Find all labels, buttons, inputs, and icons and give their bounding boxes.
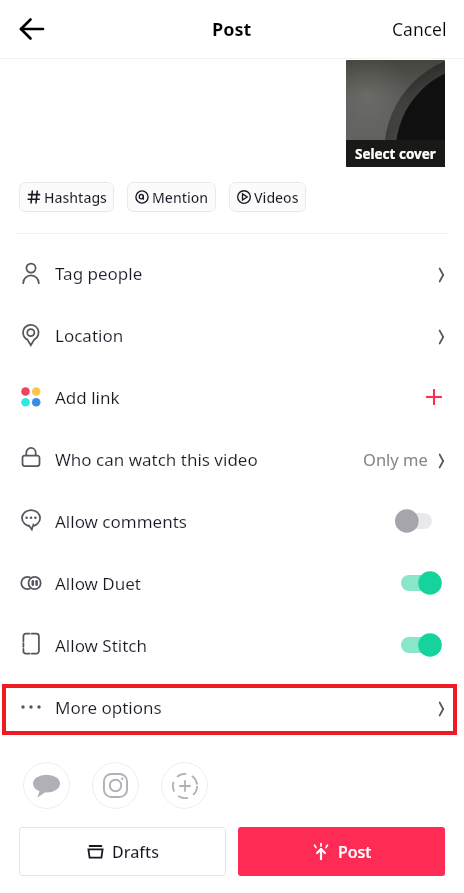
staticText: Select cover xyxy=(355,145,436,163)
staticText: Drafts xyxy=(112,841,159,863)
staticText: Post xyxy=(212,17,252,42)
staticText: Only me xyxy=(363,448,428,470)
button[interactable]: Add to story xyxy=(161,762,208,809)
button[interactable]: Cancel xyxy=(375,5,464,53)
button[interactable]: Back xyxy=(14,11,50,47)
staticText: Who can watch this video xyxy=(55,448,258,471)
button[interactable]: Add link xyxy=(0,366,464,428)
button[interactable]: Who can watch this video xyxy=(0,428,464,490)
button[interactable]: Allow Stitch xyxy=(0,614,464,676)
staticText: Tag people xyxy=(55,262,143,285)
staticText: More options xyxy=(55,696,162,719)
button[interactable]: Share to messages xyxy=(23,762,70,809)
button[interactable]: More options xyxy=(0,676,464,738)
button[interactable]: Tag people xyxy=(0,242,464,304)
button[interactable]: On xyxy=(395,570,442,596)
button[interactable]: On xyxy=(395,632,442,658)
staticText: Hashtags xyxy=(44,188,107,207)
button[interactable]: Location xyxy=(0,304,464,366)
button[interactable]: Select cover xyxy=(346,60,445,167)
staticText: Cancel xyxy=(392,17,447,41)
button[interactable]: Hashtags xyxy=(19,182,114,212)
staticText: Mention xyxy=(152,188,209,207)
staticText: Add link xyxy=(55,386,120,409)
staticText: Post xyxy=(338,841,372,863)
staticText: Allow Duet xyxy=(55,572,142,595)
staticText: Videos xyxy=(254,188,299,207)
button[interactable]: Mention xyxy=(127,182,216,212)
button[interactable]: Off xyxy=(395,508,442,534)
button[interactable]: Drafts xyxy=(19,827,226,876)
staticText: Location xyxy=(55,324,124,347)
button[interactable]: Videos xyxy=(229,182,306,212)
button[interactable]: Allow comments xyxy=(0,490,464,552)
staticText: Allow comments xyxy=(55,510,187,533)
staticText: Allow Stitch xyxy=(55,634,148,657)
button[interactable]: Post xyxy=(238,827,445,876)
button[interactable]: Share to Instagram xyxy=(92,762,139,809)
button[interactable]: Allow Duet xyxy=(0,552,464,614)
